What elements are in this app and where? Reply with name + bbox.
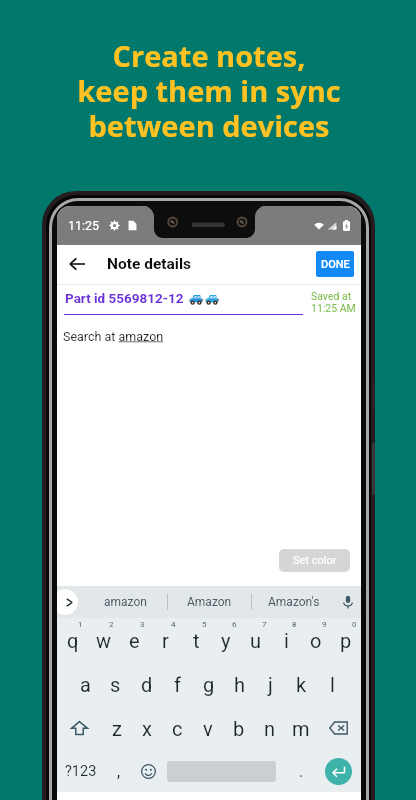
button[interactable]: , bbox=[105, 750, 133, 792]
button[interactable]: Back bbox=[63, 250, 91, 278]
staticText: n bbox=[264, 717, 276, 740]
staticText: x bbox=[142, 717, 152, 740]
staticText: k bbox=[296, 673, 307, 696]
staticText: Search at amazon bbox=[63, 329, 164, 344]
staticText: Amazon bbox=[187, 595, 232, 609]
button[interactable]: amazon bbox=[83, 586, 167, 618]
staticText: p bbox=[340, 629, 352, 652]
staticText: . bbox=[299, 762, 304, 781]
staticText: 8 bbox=[292, 620, 297, 629]
staticText: Part id 5569812-12 bbox=[65, 290, 184, 306]
button[interactable]: Amazon bbox=[168, 586, 251, 618]
staticText: m bbox=[292, 717, 310, 740]
staticText: 6 bbox=[232, 620, 237, 629]
staticText: Note details bbox=[107, 255, 191, 273]
staticText: 3 bbox=[140, 620, 145, 629]
staticText: 0 bbox=[352, 620, 357, 629]
button[interactable]: g bbox=[193, 662, 224, 706]
button[interactable]: y bbox=[211, 618, 241, 662]
staticText: u bbox=[250, 629, 262, 652]
button[interactable]: Emoji bbox=[133, 750, 163, 792]
staticText: Saved at bbox=[311, 290, 352, 302]
button[interactable]: z bbox=[102, 706, 132, 750]
button[interactable]: o bbox=[301, 618, 331, 662]
staticText: Set color bbox=[293, 554, 337, 567]
button[interactable]: p bbox=[331, 618, 361, 662]
staticText: g bbox=[203, 673, 215, 696]
button[interactable]: ?123 bbox=[57, 750, 105, 792]
staticText: DONE bbox=[321, 258, 350, 271]
button[interactable]: v bbox=[192, 706, 223, 750]
button[interactable]: d bbox=[131, 662, 162, 706]
staticText: ?123 bbox=[65, 763, 97, 780]
button[interactable]: m bbox=[285, 706, 316, 750]
staticText: e bbox=[129, 629, 140, 652]
staticText: s bbox=[110, 673, 121, 696]
button[interactable]: Shift bbox=[57, 706, 102, 750]
button[interactable]: t bbox=[181, 618, 211, 662]
staticText: 2 bbox=[109, 620, 114, 629]
staticText: z bbox=[112, 717, 122, 740]
button[interactable]: c bbox=[162, 706, 192, 750]
button[interactable]: Backspace bbox=[316, 706, 361, 750]
staticText: t bbox=[193, 629, 200, 652]
button[interactable] bbox=[163, 750, 287, 792]
staticText: h bbox=[234, 673, 246, 696]
button[interactable]: a bbox=[70, 662, 100, 706]
staticText: i bbox=[284, 629, 289, 652]
staticText: b bbox=[233, 717, 245, 740]
staticText: j bbox=[268, 673, 273, 696]
button[interactable]: DONE bbox=[316, 251, 354, 277]
staticText: 11:25 AM bbox=[311, 302, 356, 314]
staticText: o bbox=[310, 629, 322, 652]
staticText: amazon bbox=[104, 595, 147, 609]
staticText: c bbox=[172, 717, 183, 740]
staticText: 9 bbox=[322, 620, 327, 629]
button[interactable]: Set color bbox=[279, 549, 350, 572]
button[interactable]: f bbox=[162, 662, 193, 706]
button[interactable]: q bbox=[57, 618, 88, 662]
button[interactable]: u bbox=[241, 618, 271, 662]
button[interactable]: i bbox=[271, 618, 301, 662]
staticText: 5 bbox=[202, 620, 207, 629]
staticText: Amazon's bbox=[268, 595, 320, 609]
button[interactable]: More suggestions bbox=[57, 589, 78, 615]
staticText: v bbox=[203, 717, 213, 740]
button[interactable]: Amazon's bbox=[252, 586, 335, 618]
staticText: l bbox=[330, 673, 335, 696]
staticText: d bbox=[141, 673, 153, 696]
button[interactable]: s bbox=[100, 662, 131, 706]
staticText: q bbox=[67, 629, 79, 652]
staticText: y bbox=[221, 629, 231, 652]
staticText: f bbox=[174, 673, 181, 696]
button[interactable]: l bbox=[317, 662, 348, 706]
staticText: , bbox=[117, 762, 121, 781]
staticText: 1 bbox=[78, 620, 83, 629]
staticText: 7 bbox=[262, 620, 267, 629]
button[interactable]: w bbox=[88, 618, 119, 662]
button[interactable]: Enter bbox=[315, 750, 361, 792]
button[interactable]: h bbox=[224, 662, 255, 706]
button[interactable]: r bbox=[150, 618, 181, 662]
staticText: 4 bbox=[171, 620, 176, 629]
button[interactable]: n bbox=[254, 706, 285, 750]
button[interactable]: k bbox=[286, 662, 317, 706]
staticText: w bbox=[96, 629, 112, 652]
button[interactable]: j bbox=[255, 662, 286, 706]
staticText: a bbox=[80, 673, 91, 696]
staticText: Create notes, keep them in sync between … bbox=[1, 36, 416, 146]
button[interactable]: b bbox=[223, 706, 254, 750]
staticText: 11:25 bbox=[68, 218, 100, 233]
button[interactable]: x bbox=[132, 706, 162, 750]
staticText: r bbox=[162, 629, 169, 652]
button[interactable]: Voice input bbox=[335, 586, 361, 618]
button[interactable]: e bbox=[119, 618, 150, 662]
button[interactable]: . bbox=[287, 750, 315, 792]
